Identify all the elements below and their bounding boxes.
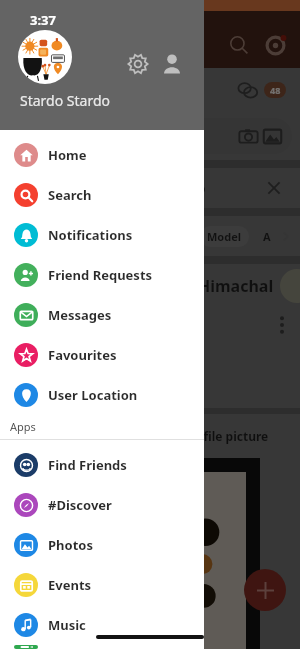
button[interactable]: Home [0,135,204,175]
staticText: User Location [48,386,138,404]
button[interactable]: Photos [0,525,204,565]
staticText: #Discover [48,496,112,514]
button[interactable]: Profile photo [18,30,72,84]
button[interactable]: #Discover [0,485,204,525]
button[interactable]: Music [0,605,204,645]
staticText: Messages [48,306,112,324]
staticText: Music [48,616,86,634]
staticText: A [263,229,271,244]
staticText: Himachal [198,275,274,297]
button[interactable]: Find Friends [0,445,204,485]
button[interactable]: Messages [0,295,204,335]
staticText: Photos [48,536,93,554]
button[interactable]: Favourites [0,335,204,375]
button[interactable]: Notifications [0,215,204,255]
staticText: Find Friends [48,456,127,474]
staticText: ofile picture [196,428,269,444]
staticText: Favourites [48,346,117,364]
button[interactable]: Search [222,28,256,62]
button[interactable]: Friend Requests [0,255,204,295]
staticText: Stardo Stardo [20,91,110,110]
staticText: 3:37 [30,11,56,29]
button[interactable]: User Location [0,375,204,415]
button[interactable]: Add [244,569,286,611]
staticText: Events [48,576,92,594]
staticText: Home [48,146,87,164]
button[interactable]: Account [158,50,186,78]
staticText: Search [48,186,92,204]
staticText: o [198,180,206,196]
button[interactable]: Events [0,565,204,605]
staticText: 48 [270,84,281,96]
button[interactable]: Settings [124,50,152,78]
button[interactable]: Search [0,175,204,215]
staticText: Notifications [48,226,133,244]
button[interactable]: Videos [0,645,204,649]
staticText: Model [207,229,242,244]
staticText: Friend Requests [48,266,153,284]
staticText: Apps [10,419,36,434]
button[interactable]: Notifications [258,28,292,62]
